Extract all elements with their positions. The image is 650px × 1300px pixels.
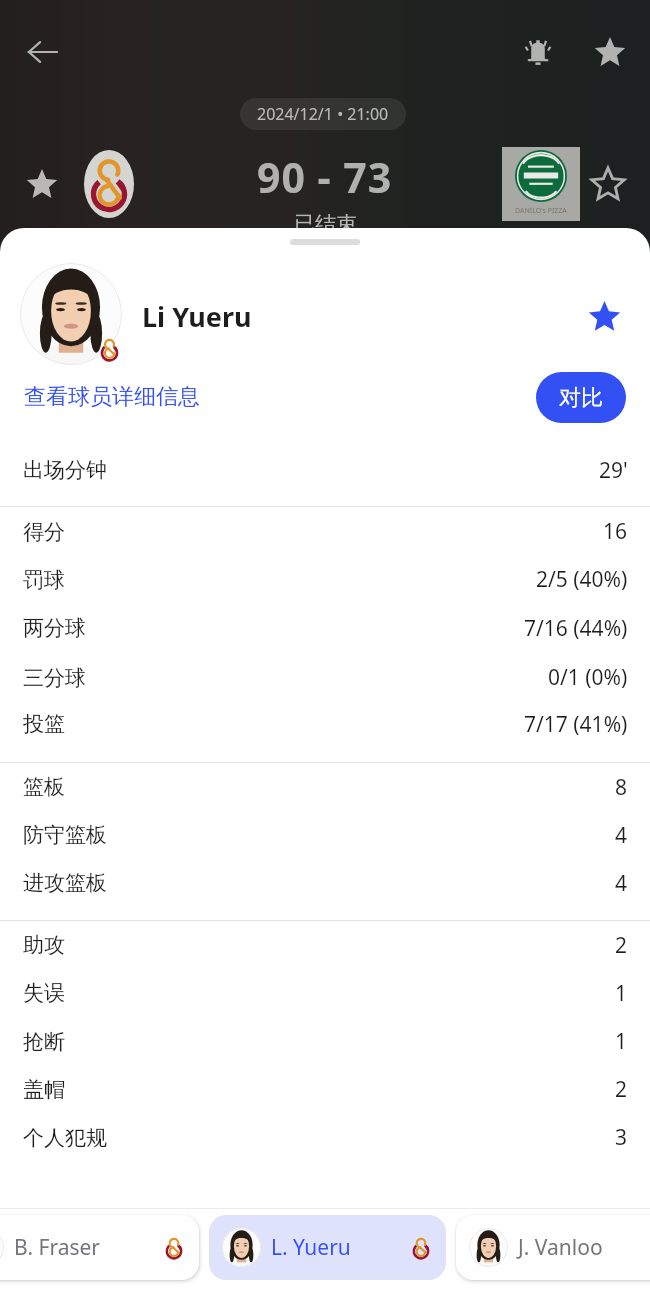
staticText: 2/5 (40%) — [536, 565, 628, 594]
button[interactable]: 助攻 — [0, 921, 650, 969]
staticText: 1 — [615, 979, 628, 1008]
button[interactable]: 三分球 — [0, 653, 650, 702]
staticText: 对比 — [559, 384, 603, 412]
staticText: 8 — [615, 773, 628, 802]
staticText: 4 — [615, 869, 628, 898]
button[interactable]: 罚球 — [0, 556, 650, 603]
button[interactable]: Notifications — [506, 20, 570, 84]
staticText: 0/1 (0%) — [548, 663, 628, 692]
button[interactable]: J. Vanloo — [456, 1215, 650, 1280]
button[interactable]: L. Yueru — [209, 1215, 446, 1280]
button[interactable]: 出场分钟 — [0, 434, 650, 506]
staticText: DANILO's PIZZA — [515, 206, 567, 216]
button[interactable]: Back — [10, 20, 74, 84]
staticText: 盖帽 — [23, 1077, 65, 1103]
staticText: 7/16 (44%) — [524, 614, 628, 643]
staticText: Li Yueru — [142, 298, 252, 335]
staticText: 2024/12/1 • 21:00 — [257, 103, 389, 125]
staticText: 查看球员详细信息 — [24, 383, 200, 411]
button[interactable]: Favorite player — [574, 286, 634, 346]
staticText: 三分球 — [23, 665, 86, 691]
staticText: B. Fraser — [14, 1233, 101, 1262]
button[interactable]: 进攻篮板 — [0, 859, 650, 907]
button[interactable]: Li Yueru — [0, 250, 650, 374]
button[interactable]: Favorite match — [578, 20, 642, 84]
button[interactable]: 查看球员详细信息 — [0, 377, 210, 417]
staticText: 16 — [603, 517, 628, 546]
staticText: 7/17 (41%) — [524, 710, 628, 739]
staticText: 90 - 73 — [257, 149, 393, 205]
button[interactable]: 对比 — [536, 372, 626, 423]
button[interactable]: Favorite Antspor — [576, 152, 640, 216]
staticText: 1 — [615, 1027, 628, 1056]
staticText: 抢断 — [23, 1029, 65, 1055]
button[interactable]: 盖帽 — [0, 1066, 650, 1113]
staticText: 个人犯规 — [23, 1125, 107, 1151]
staticText: 失误 — [23, 980, 65, 1006]
button[interactable]: 得分 — [0, 507, 650, 556]
button[interactable]: 失误 — [0, 969, 650, 1017]
staticText: 2 — [615, 931, 628, 960]
staticText: 罚球 — [23, 567, 65, 593]
staticText: 得分 — [23, 519, 65, 545]
staticText: 3 — [615, 1123, 628, 1152]
staticText: 29' — [599, 456, 628, 485]
staticText: 两分球 — [23, 615, 86, 641]
staticText: J. Vanloo — [518, 1233, 603, 1262]
button[interactable]: 篮板 — [0, 763, 650, 811]
staticText: 助攻 — [23, 932, 65, 958]
staticText: 防守篮板 — [23, 822, 107, 848]
staticText: 4 — [615, 821, 628, 850]
staticText: 2 — [615, 1075, 628, 1104]
button[interactable]: 两分球 — [0, 603, 650, 653]
staticText: 进攻篮板 — [23, 870, 107, 896]
button[interactable]: 2024/12/1 • 21:00 — [240, 98, 406, 130]
staticText: 篮板 — [23, 774, 65, 800]
staticText: L. Yueru — [271, 1233, 351, 1262]
button[interactable]: 投篮 — [0, 702, 650, 746]
staticText: 投篮 — [23, 711, 65, 737]
staticText: 出场分钟 — [23, 457, 107, 483]
button[interactable]: 抢断 — [0, 1017, 650, 1066]
button[interactable]: B. Fraser — [0, 1215, 199, 1280]
button[interactable]: Favorite Galatasaray — [10, 152, 74, 216]
staticText: 已结束 — [294, 211, 357, 237]
button[interactable]: 防守篮板 — [0, 811, 650, 859]
button[interactable]: 个人犯规 — [0, 1113, 650, 1162]
